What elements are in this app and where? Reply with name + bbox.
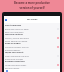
staticText: Clear remaining mail and archive old thr… <box>5 55 29 60</box>
staticText: Plan tomorrow <box>5 24 22 27</box>
button[interactable]: Morning routine <box>4 33 60 42</box>
staticText: My Tasks <box>27 18 38 21</box>
staticText: Block two hours for deep work this after… <box>5 28 29 33</box>
staticText: Morning routine <box>5 33 23 36</box>
staticText: Read 20 pages <box>5 42 21 45</box>
staticText: Write three wins today and one lesson <box>5 64 27 69</box>
other: Menu <box>5 19 7 21</box>
staticText: Continue chapter four on building identi… <box>5 46 29 51</box>
button[interactable]: Read 20 pages <box>4 42 60 51</box>
staticText: Evening reflection <box>5 60 25 63</box>
staticText: version of yourself <box>0 6 64 10</box>
staticText: Inbox zero sprint <box>5 51 24 54</box>
button[interactable]: Evening reflection <box>4 60 60 69</box>
staticText: Stretch, journal and drink water before … <box>5 37 29 42</box>
staticText: Become a more productive <box>0 1 64 5</box>
button[interactable]: My Tasks <box>4 16 60 23</box>
button[interactable]: Plan tomorrow <box>4 24 60 33</box>
button[interactable]: Inbox zero sprint <box>4 51 60 60</box>
